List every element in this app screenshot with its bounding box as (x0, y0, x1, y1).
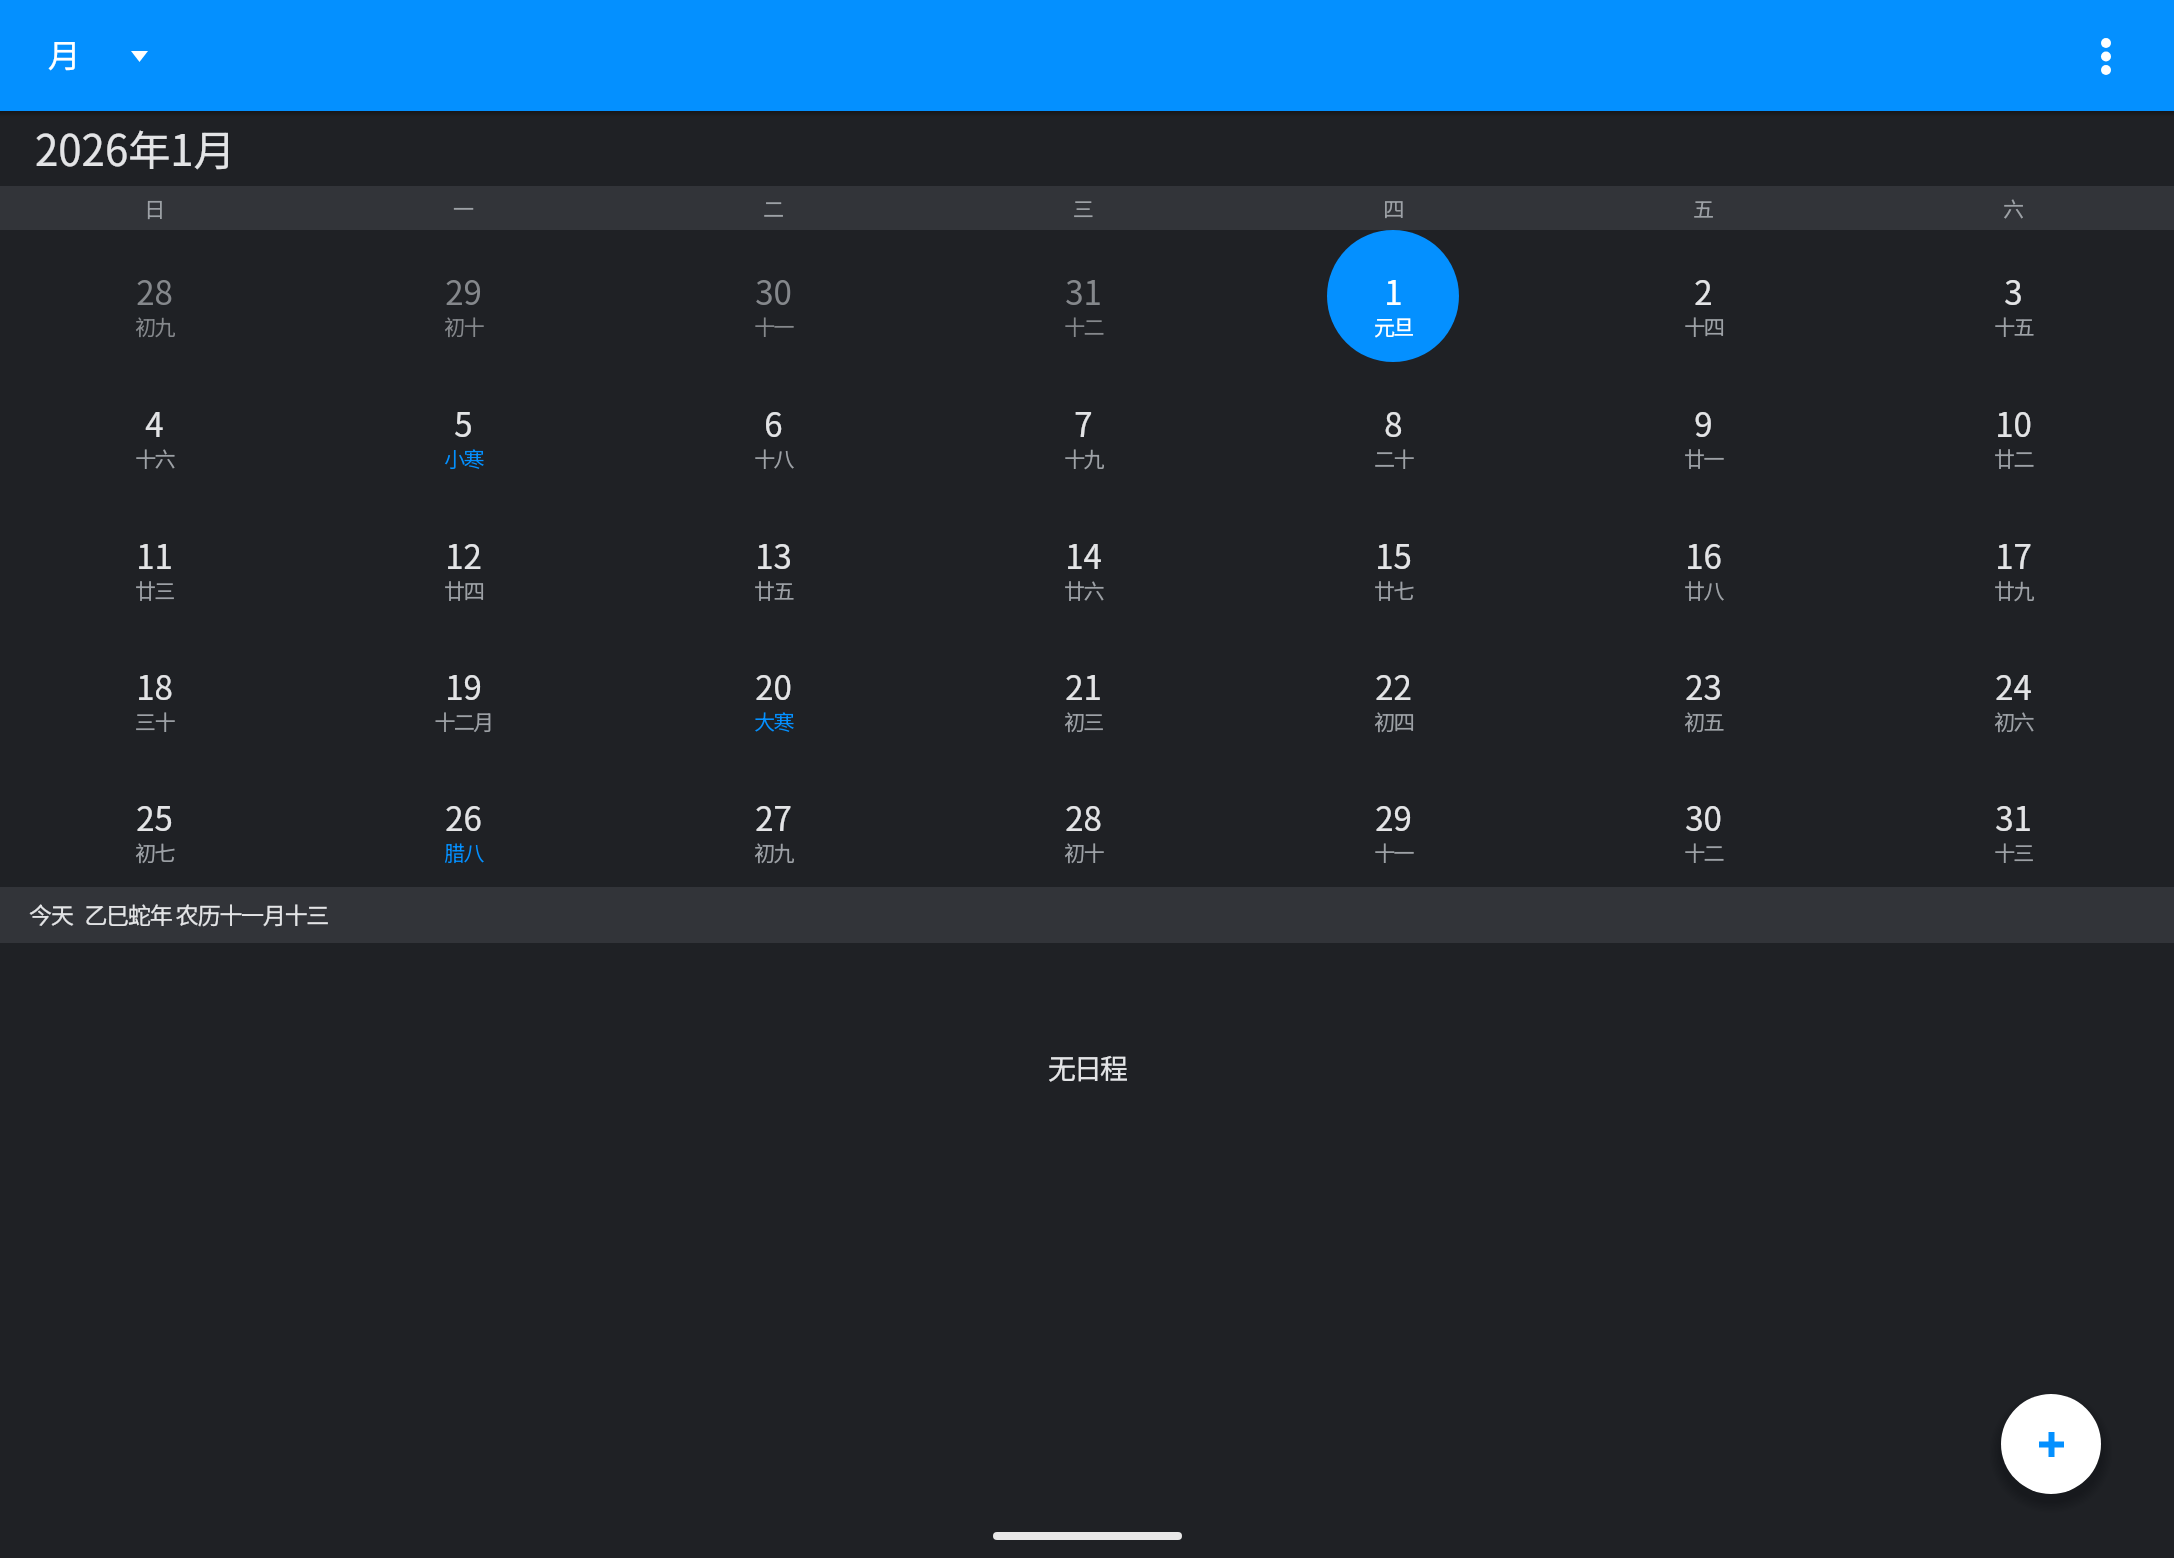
staticText: 25 (136, 793, 173, 841)
staticText: 廿四 (444, 575, 483, 605)
staticText: 二 (763, 193, 784, 223)
staticText: 十九 (1064, 443, 1103, 473)
button[interactable]: 23 (1548, 625, 1858, 756)
button[interactable]: 2026年1月 (13, 111, 258, 186)
button[interactable]: 29 (309, 230, 618, 362)
staticText: 无日程 (1048, 1047, 1127, 1088)
staticText: 24 (1995, 662, 2032, 710)
staticText: 29 (1375, 793, 1412, 841)
button[interactable]: 29 (1238, 756, 1548, 887)
staticText: 28 (136, 267, 173, 315)
staticText: 初九 (135, 311, 174, 341)
staticText: 27 (755, 793, 792, 841)
staticText: 17 (1995, 531, 2032, 579)
button[interactable]: 19 (309, 625, 618, 756)
staticText: 十二 (1684, 837, 1723, 867)
staticText: 初五 (1684, 706, 1723, 736)
staticText: 31 (1065, 267, 1102, 315)
button[interactable]: 30 (1548, 756, 1858, 887)
button[interactable]: 28 (928, 756, 1238, 887)
button[interactable]: 18 (0, 625, 309, 756)
button[interactable]: 10 (1858, 362, 2168, 494)
staticText: 18 (136, 662, 173, 710)
staticText: 31 (1995, 793, 2032, 841)
button[interactable]: 8 (1238, 362, 1548, 494)
button[interactable]: 2 (1548, 230, 1858, 362)
staticText: 廿一 (1684, 443, 1723, 473)
button[interactable]: 22 (1238, 625, 1548, 756)
staticText: 初三 (1064, 706, 1103, 736)
button[interactable]: 11 (0, 494, 309, 625)
staticText: 十六 (135, 443, 174, 473)
staticText: 1 (1384, 267, 1403, 315)
staticText: 2 (1694, 267, 1713, 315)
button[interactable]: 26 (309, 756, 618, 887)
staticText: 12 (445, 531, 482, 579)
staticText: 三十 (135, 706, 174, 736)
button[interactable]: 15 (1238, 494, 1548, 625)
staticText: 初四 (1374, 706, 1413, 736)
button[interactable]: 12 (309, 494, 618, 625)
button[interactable]: 月 (22, 16, 174, 96)
staticText: 13 (755, 531, 792, 579)
button[interactable]: 7 (928, 362, 1238, 494)
button[interactable]: 16 (1548, 494, 1858, 625)
staticText: 三 (1073, 193, 1094, 223)
button[interactable]: 17 (1858, 494, 2168, 625)
button[interactable]: 28 (0, 230, 309, 362)
staticText: 8 (1384, 399, 1403, 447)
staticText: 十二月 (434, 706, 493, 736)
button[interactable]: 25 (0, 756, 309, 887)
button[interactable]: 20 (618, 625, 928, 756)
staticText: 廿六 (1064, 575, 1103, 605)
staticText: 日 (144, 193, 165, 223)
button[interactable]: 14 (928, 494, 1238, 625)
staticText: 小寒 (444, 443, 483, 473)
staticText: 十八 (754, 443, 793, 473)
button[interactable]: 13 (618, 494, 928, 625)
staticText: 28 (1065, 793, 1102, 841)
button[interactable]: 4 (0, 362, 309, 494)
staticText: 11 (136, 531, 173, 579)
staticText: 初十 (444, 311, 483, 341)
button[interactable]: More options (2076, 26, 2136, 86)
staticText: 4 (145, 399, 164, 447)
staticText: 十四 (1684, 311, 1723, 341)
staticText: 初六 (1994, 706, 2033, 736)
button[interactable]: 1 (1238, 230, 1548, 362)
staticText: 廿八 (1684, 575, 1723, 605)
staticText: 初七 (135, 837, 174, 867)
staticText: 26 (445, 793, 482, 841)
staticText: 十一 (754, 311, 793, 341)
staticText: 四 (1383, 193, 1404, 223)
button[interactable]: 31 (928, 230, 1238, 362)
button[interactable]: 21 (928, 625, 1238, 756)
staticText: 十五 (1994, 311, 2033, 341)
staticText: 十一 (1374, 837, 1413, 867)
staticText: 7 (1074, 399, 1093, 447)
staticText: 六 (2003, 193, 2024, 223)
staticText: 初九 (754, 837, 793, 867)
staticText: 9 (1694, 399, 1713, 447)
staticText: 廿二 (1994, 443, 2033, 473)
button[interactable]: 9 (1548, 362, 1858, 494)
button[interactable]: 今天 乙巳蛇年 农历十一月十三 (0, 887, 2174, 943)
staticText: 十三 (1994, 837, 2033, 867)
staticText: 十二 (1064, 311, 1103, 341)
staticText: 5 (454, 399, 473, 447)
button[interactable]: 31 (1858, 756, 2168, 887)
button[interactable]: 3 (1858, 230, 2168, 362)
button[interactable]: Add event (2001, 1394, 2101, 1494)
button[interactable]: 27 (618, 756, 928, 887)
button[interactable]: 5 (309, 362, 618, 494)
staticText: 14 (1065, 531, 1102, 579)
button[interactable]: 6 (618, 362, 928, 494)
staticText: 6 (764, 399, 783, 447)
staticText: 今天 乙巳蛇年 农历十一月十三 (29, 897, 329, 930)
button[interactable]: 24 (1858, 625, 2168, 756)
button[interactable]: 30 (618, 230, 928, 362)
staticText: 30 (1685, 793, 1722, 841)
staticText: 五 (1693, 193, 1714, 223)
staticText: 廿三 (135, 575, 174, 605)
staticText: 一 (453, 193, 474, 223)
